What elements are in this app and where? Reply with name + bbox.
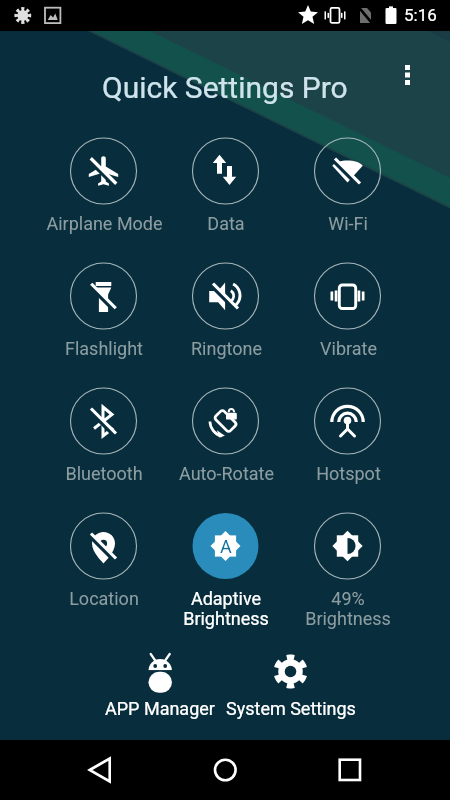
button[interactable]: Flashlight <box>43 242 165 354</box>
staticText: Wi-Fi <box>328 213 368 234</box>
staticText: Adaptive Brightness <box>183 588 269 629</box>
staticText: Bluetooth <box>65 463 143 484</box>
staticText: System Settings <box>226 698 356 719</box>
staticText: Hotspot <box>316 463 381 484</box>
button[interactable]: Back <box>70 740 130 800</box>
staticText: Auto-Rotate <box>179 463 274 484</box>
button[interactable]: Adaptive Brightness <box>165 492 287 604</box>
staticText: APP Manager <box>105 698 215 719</box>
staticText: Location <box>69 588 139 609</box>
button[interactable]: Airplane Mode <box>43 117 165 229</box>
staticText: A <box>220 536 232 557</box>
button[interactable]: Home <box>195 740 255 800</box>
staticText: Flashlight <box>65 338 143 359</box>
staticText: 49% Brightness <box>305 588 391 629</box>
button[interactable]: More options <box>387 55 427 95</box>
staticText: 5:16 <box>404 5 437 25</box>
button[interactable]: Wi-Fi <box>287 117 409 229</box>
staticText: Data <box>207 213 245 234</box>
button[interactable]: System Settings <box>223 646 358 722</box>
button[interactable]: Data <box>165 117 287 229</box>
button[interactable]: Recents <box>320 740 380 800</box>
button[interactable]: Bluetooth <box>43 367 165 479</box>
button[interactable]: APP Manager <box>95 646 225 722</box>
staticText: Vibrate <box>320 338 377 359</box>
button[interactable]: Vibrate <box>287 242 409 354</box>
button[interactable]: Ringtone <box>165 242 287 354</box>
button[interactable]: Auto-Rotate <box>165 367 287 479</box>
button[interactable]: Location <box>43 492 165 604</box>
staticText: Quick Settings Pro <box>102 70 348 105</box>
staticText: Airplane Mode <box>46 213 163 234</box>
button[interactable]: 49% Brightness <box>287 492 409 604</box>
button[interactable]: Hotspot <box>287 367 409 479</box>
staticText: Ringtone <box>191 338 262 359</box>
